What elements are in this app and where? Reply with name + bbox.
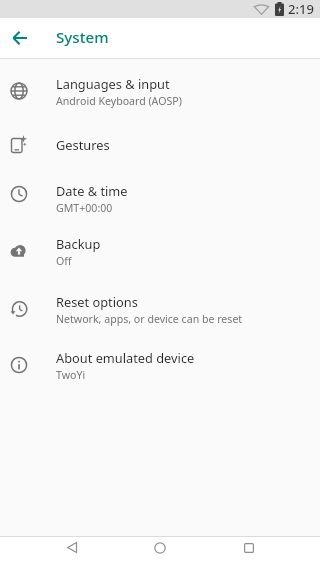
button[interactable] <box>6 24 34 52</box>
staticText: GMT+00:00 <box>56 201 113 215</box>
button[interactable] <box>227 537 271 568</box>
button[interactable]: Gestures <box>0 116 320 172</box>
button[interactable] <box>138 537 182 568</box>
staticText: About emulated device <box>56 349 195 366</box>
staticText: Android Keyboard (AOSP) <box>56 94 182 108</box>
staticText: 2:19 <box>288 0 314 18</box>
staticText: TwoYi <box>56 368 86 382</box>
button[interactable]: Languages & input <box>0 63 320 119</box>
staticText: Date & time <box>56 182 128 199</box>
staticText: Reset options <box>56 293 138 310</box>
staticText: Languages & input <box>56 75 170 92</box>
button[interactable]: Date & time <box>0 170 320 226</box>
button[interactable]: Backup <box>0 223 320 279</box>
button[interactable]: About emulated device <box>0 337 320 393</box>
staticText: Off <box>56 254 72 268</box>
staticText: Network, apps, or device can be reset <box>56 312 243 326</box>
button[interactable] <box>50 537 94 568</box>
button[interactable]: Reset options <box>0 281 320 337</box>
staticText: System <box>56 27 109 48</box>
staticText: Backup <box>56 235 101 252</box>
staticText: Gestures <box>56 136 110 153</box>
